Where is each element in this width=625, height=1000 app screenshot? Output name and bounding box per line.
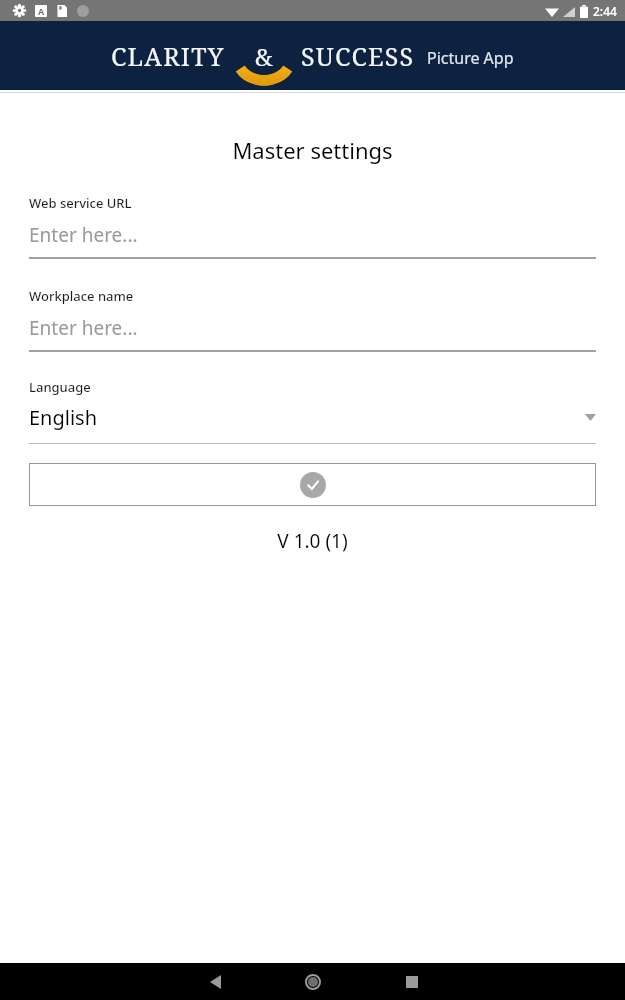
button[interactable]: Recent apps	[397, 967, 427, 997]
staticText: &	[255, 40, 273, 73]
staticText: CLARITY	[111, 39, 225, 73]
staticText: Picture App	[427, 47, 514, 69]
staticText: SUCCESS	[301, 39, 415, 73]
staticText: Language	[29, 378, 91, 396]
button[interactable]: English	[29, 404, 596, 444]
staticText: Enter here...	[29, 222, 138, 248]
other: Select language	[585, 414, 596, 421]
button[interactable]: Back	[200, 967, 230, 997]
staticText: Web service URL	[29, 194, 132, 212]
staticText: Master settings	[0, 135, 625, 165]
staticText: V 1.0 (1)	[29, 528, 596, 554]
button[interactable]: Enter here...	[29, 222, 596, 259]
staticText: Workplace name	[29, 287, 134, 305]
staticText: English	[29, 404, 585, 431]
button[interactable]: Enter here...	[29, 315, 596, 352]
staticText: 2:44	[593, 3, 617, 19]
staticText: A	[38, 5, 45, 17]
button[interactable]: Confirm settings	[29, 463, 596, 506]
staticText: Enter here...	[29, 315, 138, 341]
button[interactable]: Home	[297, 966, 329, 998]
